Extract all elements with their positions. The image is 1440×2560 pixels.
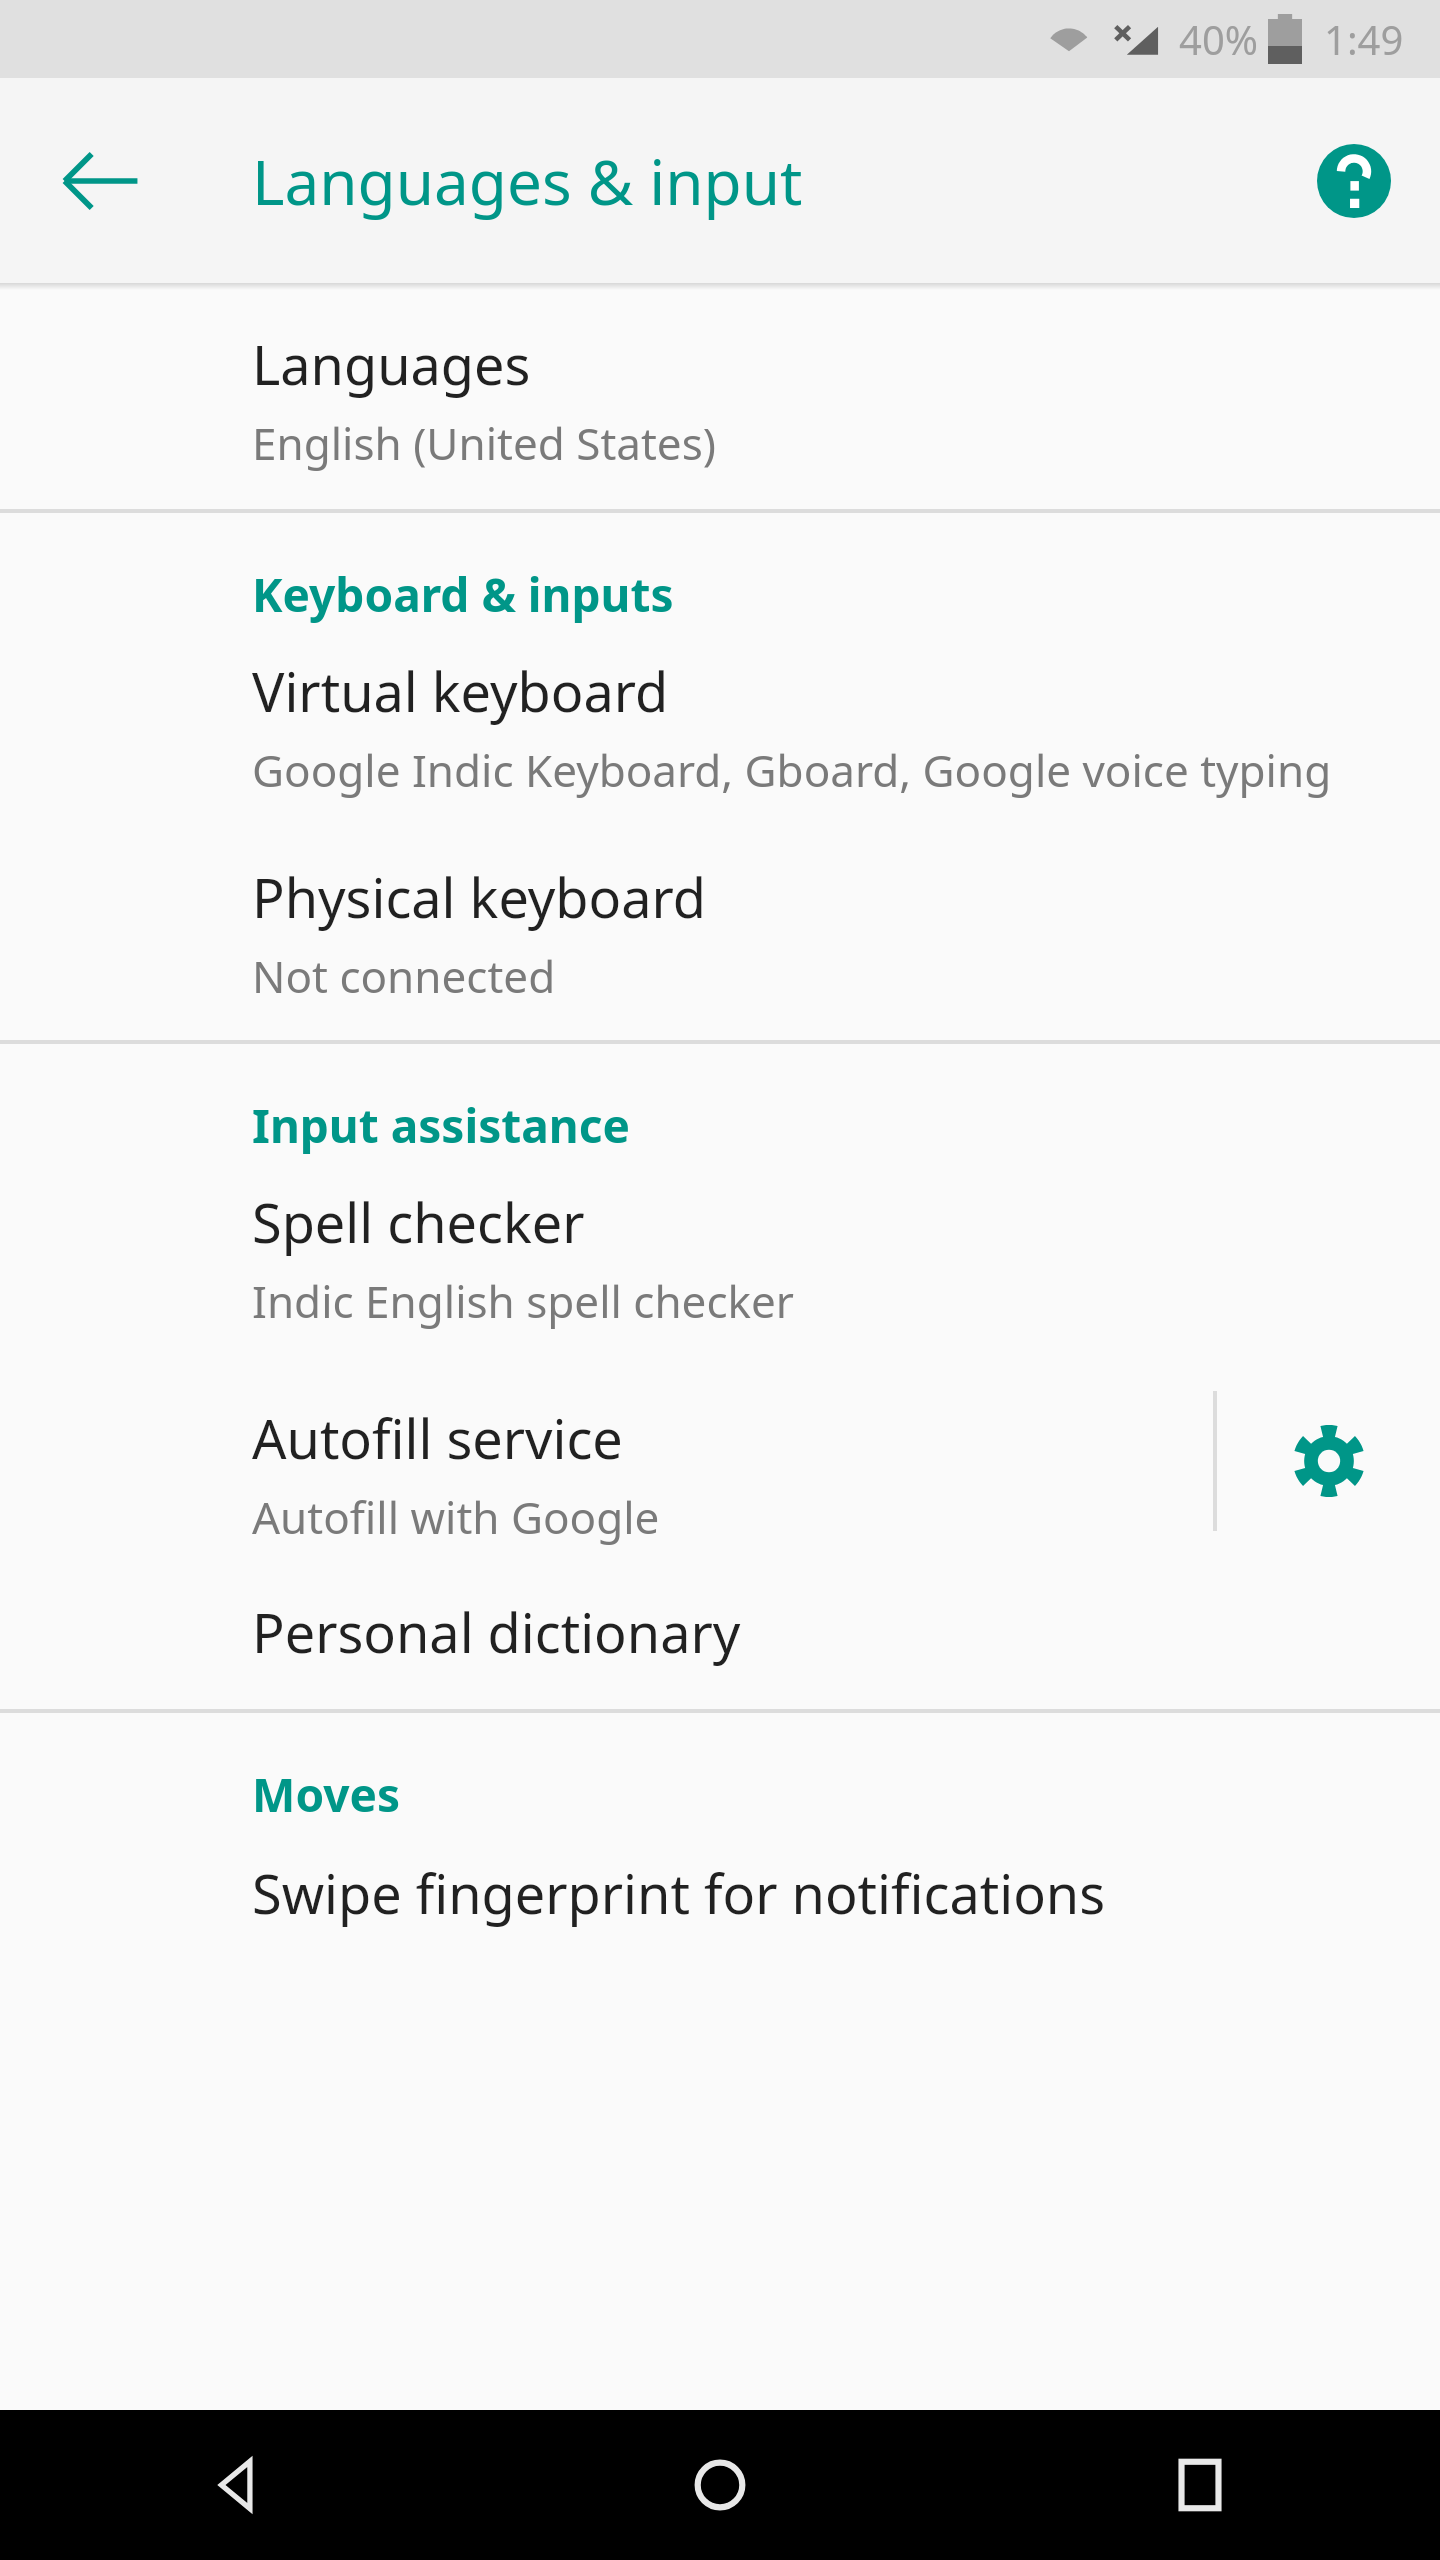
staticText: Autofill with Google [252,1487,660,1547]
button[interactable]: Languages [0,289,1440,509]
button[interactable]: Spell checker [0,1157,1440,1361]
staticText: Languages [252,327,531,401]
staticText: Physical keyboard [252,860,706,934]
staticText: Input assistance [252,1094,630,1157]
staticText: Not connected [252,946,556,1006]
staticText: 1:49 [1324,12,1404,66]
staticText: Keyboard & inputs [252,563,674,626]
button[interactable]: Home [480,2410,960,2560]
button[interactable]: Personal dictionary [0,1561,1440,1709]
button[interactable]: Back [48,129,152,233]
button[interactable]: Physical keyboard [0,830,1440,1040]
button[interactable]: Swipe fingerprint for notifications [0,1826,1440,1930]
staticText: Google Indic Keyboard, Gboard, Google vo… [252,740,1332,800]
staticText: Autofill service [252,1401,623,1475]
staticText: Languages & input [252,139,803,223]
staticText: Personal dictionary [252,1595,741,1669]
staticText: Spell checker [252,1185,585,1259]
staticText: 40% [1179,12,1258,66]
button[interactable]: Autofill service [0,1361,1213,1561]
staticText: Indic English spell checker [252,1271,795,1331]
button[interactable]: Autofill settings [1217,1361,1440,1561]
button[interactable]: Back [0,2410,480,2560]
staticText: Virtual keyboard [252,654,669,728]
staticText: English (United States) [252,413,716,473]
button[interactable]: Virtual keyboard [0,626,1440,830]
button[interactable]: Help [1304,131,1404,231]
staticText: Swipe fingerprint for notifications [252,1856,1106,1930]
button[interactable]: Recent apps [960,2410,1440,2560]
staticText: Moves [252,1763,401,1826]
